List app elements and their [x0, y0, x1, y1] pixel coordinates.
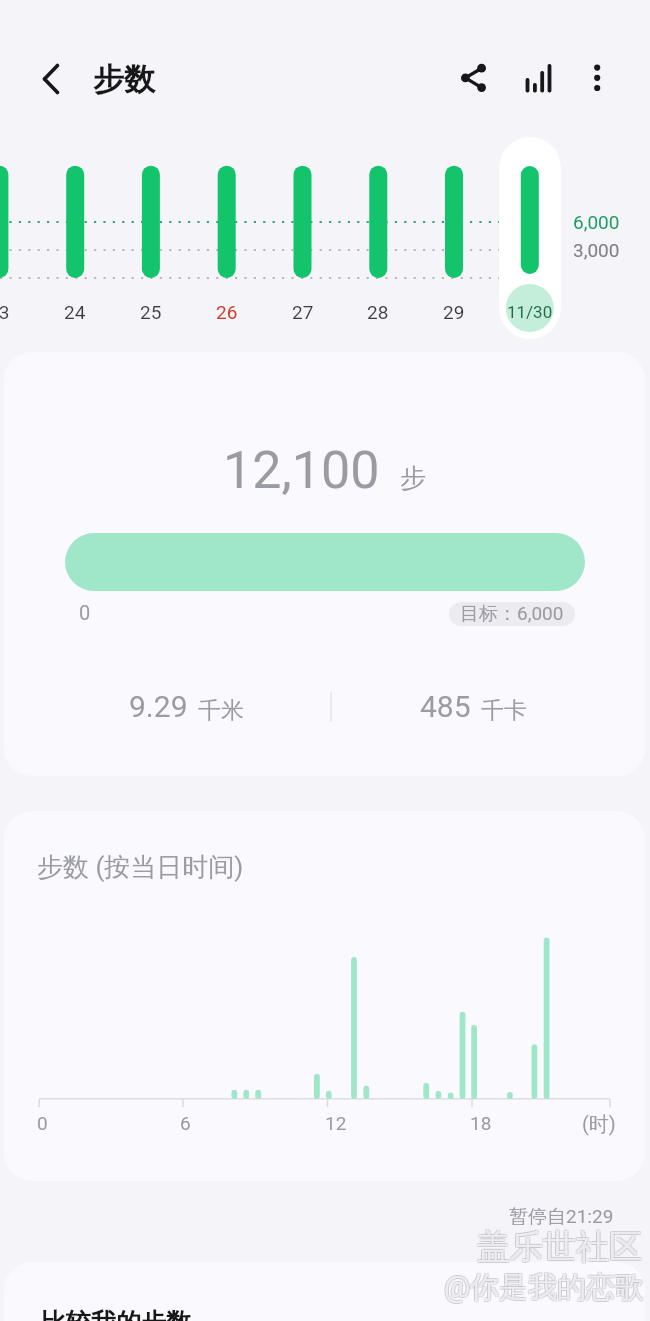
staticText: 0 [37, 1112, 48, 1134]
staticText: 千卡 [481, 696, 527, 725]
button[interactable]: 29 [424, 296, 484, 328]
staticText: 步数 (按当日时间) [37, 851, 244, 884]
staticText: 26 [216, 301, 238, 323]
staticText: 28 [367, 301, 389, 323]
staticText: @你是我的恋歌 [444, 1269, 645, 1306]
staticText: 29 [443, 301, 465, 323]
button[interactable]: 27 [273, 296, 333, 328]
staticText: @你是我的恋歌 [445, 1268, 646, 1305]
staticText: 千米 [198, 696, 244, 725]
staticText: @你是我的恋歌 [443, 1270, 644, 1307]
button[interactable]: 26 [197, 296, 257, 328]
staticText: 25 [140, 301, 162, 323]
button[interactable]: More options [573, 54, 621, 102]
staticText: 盖乐世社区 [478, 1227, 643, 1269]
staticText: 3,000 [573, 239, 620, 261]
staticText: 步数 [93, 60, 155, 99]
staticText: 24 [64, 301, 86, 323]
staticText: 9.29 [129, 689, 188, 724]
button[interactable]: 23 [0, 296, 29, 328]
button[interactable]: 24 [45, 296, 105, 328]
staticText: 目标：6,000 [460, 602, 564, 626]
staticText: 23 [0, 301, 10, 323]
button[interactable] [499, 137, 561, 339]
staticText: 盖乐世社区 [477, 1226, 642, 1268]
staticText: 比较我的步数 [41, 1307, 191, 1321]
button[interactable]: Trends [513, 54, 561, 102]
button[interactable]: 25 [121, 296, 181, 328]
staticText: (时) [582, 1112, 616, 1137]
staticText: @你是我的恋歌 [445, 1270, 646, 1307]
staticText: 12 [325, 1112, 347, 1134]
staticText: 盖乐世社区 [478, 1225, 643, 1267]
staticText: 12,100 [223, 440, 380, 501]
staticText: 18 [470, 1112, 492, 1134]
button[interactable]: Share [449, 54, 497, 102]
button[interactable]: Back [27, 54, 75, 102]
staticText: 6 [180, 1112, 191, 1134]
staticText: 盖乐世社区 [476, 1225, 641, 1267]
button[interactable]: 28 [348, 296, 408, 328]
staticText: 6,000 [573, 211, 620, 233]
staticText: 0 [79, 601, 91, 624]
button[interactable]: 比较我的步数 [4, 1262, 645, 1321]
staticText: 暂停自21:29 [509, 1205, 614, 1229]
staticText: 盖乐世社区 [476, 1227, 641, 1269]
staticText: 27 [292, 301, 314, 323]
staticText: 11/30 [507, 302, 553, 322]
staticText: 步 [400, 462, 426, 495]
staticText: 485 [420, 689, 471, 724]
staticText: @你是我的恋歌 [443, 1268, 644, 1305]
